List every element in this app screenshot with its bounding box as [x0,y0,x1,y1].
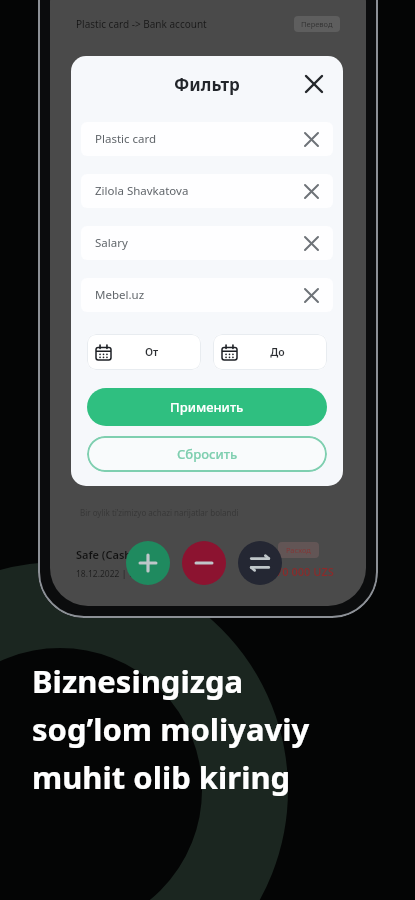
staticText: Plastic card [95,131,301,147]
button[interactable]: Сбросить [87,436,327,472]
staticText: От [111,345,192,359]
staticText: До [237,345,318,359]
button[interactable]: Remove Salary [301,233,321,253]
staticText: Plastic card -> Bank account [76,17,294,31]
staticText: Zilola Shavkatova [95,183,301,199]
button[interactable]: Salary [81,226,333,260]
staticText: Bir oylik ti’zimizyo achazi narijatlar b… [80,507,239,518]
button[interactable]: Plastic card [81,122,333,156]
staticText: Biznesingizga [32,660,244,702]
button[interactable]: До [213,334,327,370]
staticText: muhit olib kiring [32,756,291,798]
staticText: Сбросить [177,445,238,463]
button[interactable]: Transfer [238,541,282,585]
button[interactable]: Применить [87,388,327,426]
staticText: Фильтр [174,73,240,96]
staticText: Salary [95,235,301,251]
staticText: 18.12.2022 | T [76,568,134,580]
button[interactable]: Remove Mebel.uz [301,285,321,305]
staticText: 70 000 UZS [276,564,334,579]
staticText: Safe (Cash) [76,547,135,562]
button[interactable]: Mebel.uz [81,278,333,312]
button[interactable]: Remove Plastic card [301,129,321,149]
staticText: Перевод [301,19,333,29]
staticText: Mebel.uz [95,287,301,303]
button[interactable]: Add expense [182,541,226,585]
button[interactable]: От [87,334,201,370]
staticText: sog’lom moliyaviy [32,708,310,750]
button[interactable]: Zilola Shavkatova [81,174,333,208]
button[interactable]: Close [297,67,331,101]
staticText: Применить [170,398,244,416]
button[interactable]: Remove Zilola Shavkatova [301,181,321,201]
staticText: Расход [286,545,311,555]
button[interactable]: Add income [126,541,170,585]
